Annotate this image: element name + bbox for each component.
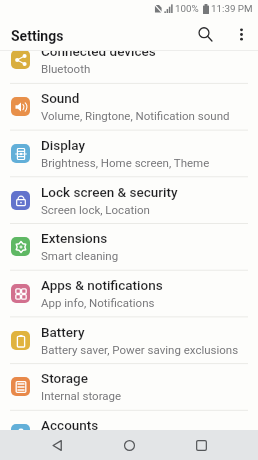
staticText: Brightness, Home screen, Theme [41,156,210,169]
staticText: Display [41,137,86,153]
button[interactable]: Apps & notifications [0,270,258,317]
staticText: Volume, Ringtone, Notification sound [41,109,230,122]
button[interactable]: Back [42,430,72,460]
staticText: Smart cleaning [41,249,119,262]
button[interactable]: Home [114,430,144,460]
staticText: Apps & notifications [41,277,163,293]
staticText: Lock screen & security [41,184,178,200]
button[interactable]: Battery [0,317,258,364]
button[interactable]: Display [0,130,258,177]
staticText: App info, Notifications [41,296,155,309]
button[interactable]: Extensions [0,223,258,270]
staticText: Storage [41,370,88,386]
button[interactable]: Accounts [0,410,258,430]
staticText: Battery saver, Power saving exclusions [41,343,239,356]
staticText: 100% [175,3,199,14]
staticText: Extensions [41,230,108,246]
staticText: Bluetooth [41,62,91,75]
staticText: Internal storage [41,389,122,402]
button[interactable]: Lock screen & security [0,177,258,224]
staticText: Accounts [41,417,99,430]
button[interactable]: Search [192,21,218,47]
staticText: 11:39 PM [211,3,253,14]
staticText: Screen lock, Location [41,203,150,216]
button[interactable]: Recent apps [186,430,216,460]
button[interactable]: Connected devices [0,51,258,83]
staticText: Connected devices [41,51,156,59]
button[interactable]: Sound [0,83,258,130]
staticText: Battery [41,324,85,340]
button[interactable]: More options [228,21,254,47]
button[interactable]: Storage [0,363,258,410]
staticText: Settings [11,28,64,44]
staticText: Sound [41,90,80,106]
